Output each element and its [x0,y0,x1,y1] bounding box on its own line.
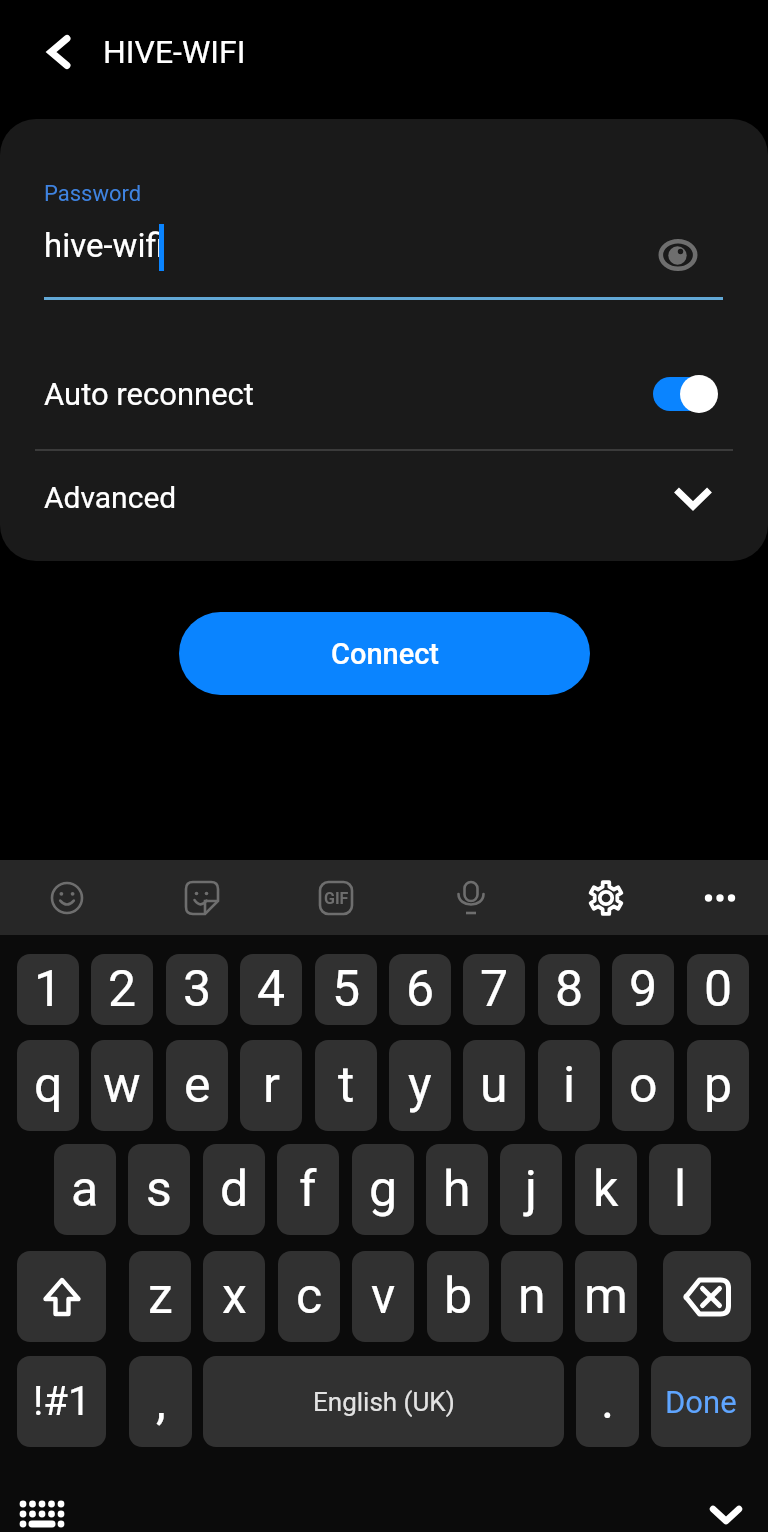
button[interactable]: 3 [166,954,228,1025]
staticText: 5 [332,960,361,1019]
staticText: d [220,1160,249,1219]
button[interactable]: j [500,1144,562,1235]
staticText: c [296,1267,323,1326]
button[interactable]: o [612,1040,674,1131]
button[interactable]: Voice input [438,860,504,935]
staticText: p [704,1056,733,1115]
staticText: l [674,1160,687,1219]
staticText: Password [44,181,142,207]
staticText: a [71,1160,99,1219]
button[interactable]: 7 [463,954,525,1025]
button[interactable]: d [203,1144,265,1235]
staticText: HIVE-WIFI [103,33,246,71]
button[interactable]: 8 [538,954,600,1025]
staticText: u [480,1056,508,1115]
button[interactable]: Keyboard settings [573,860,639,935]
staticText: Auto reconnect [44,376,254,412]
button[interactable]: v [352,1251,414,1342]
staticText: w [103,1056,141,1115]
button[interactable]: r [240,1040,302,1131]
button[interactable]: Emoji [34,860,100,935]
button[interactable]: 0 [687,954,749,1025]
button[interactable]: 4 [240,954,302,1025]
staticText: i [563,1056,576,1115]
staticText: h [443,1160,471,1219]
button[interactable]: k [575,1144,637,1235]
staticText: v [371,1267,396,1326]
button[interactable]: GIF [303,860,369,935]
button[interactable]: Connect [179,612,590,695]
button[interactable]: !#1 [17,1356,106,1447]
button[interactable]: y [389,1040,451,1131]
staticText: o [629,1056,658,1115]
staticText: t [338,1056,355,1115]
button[interactable]: English (UK) [203,1356,564,1447]
button[interactable]: Show password [649,230,707,280]
button[interactable]: 9 [612,954,674,1025]
button[interactable]: Auto reconnect [0,345,768,443]
button[interactable]: a [54,1144,116,1235]
button[interactable]: z [129,1251,191,1342]
staticText: 1 [34,960,63,1019]
staticText: . [601,1372,615,1431]
button[interactable]: l [649,1144,711,1235]
staticText: 6 [406,960,435,1019]
button[interactable]: h [426,1144,488,1235]
staticText: !#1 [33,1378,91,1425]
button[interactable]: t [315,1040,377,1131]
staticText: 4 [257,960,286,1019]
button[interactable]: Switch keyboard [14,1487,70,1532]
staticText: b [444,1267,473,1326]
button[interactable]: w [91,1040,153,1131]
button[interactable]: c [278,1251,340,1342]
button[interactable]: f [277,1144,339,1235]
button[interactable]: Done [651,1356,751,1447]
button[interactable]: Advanced [0,450,768,545]
staticText: k [593,1160,619,1219]
staticText: n [518,1267,546,1326]
button[interactable]: g [352,1144,414,1235]
button[interactable]: Back [0,7,105,97]
button[interactable]: n [501,1251,563,1342]
staticText: j [525,1160,537,1219]
button[interactable]: Auto reconnect [653,374,718,414]
staticText: r [263,1056,280,1115]
button[interactable]: Shift [17,1251,106,1342]
button[interactable]: 2 [91,954,153,1025]
staticText: 0 [704,960,733,1019]
button[interactable]: 5 [315,954,377,1025]
staticText: 3 [183,960,212,1019]
staticText: z [148,1267,173,1326]
staticText: x [222,1267,247,1326]
button[interactable]: More options [687,860,753,935]
button[interactable]: u [463,1040,525,1131]
staticText: e [184,1056,211,1115]
button[interactable]: x [203,1251,265,1342]
staticText: s [146,1160,172,1219]
staticText: hive-wifi [44,226,164,265]
staticText: GIF [324,889,349,908]
staticText: 9 [629,960,658,1019]
staticText: 8 [555,960,584,1019]
staticText: 7 [480,960,509,1019]
button[interactable]: 1 [17,954,79,1025]
button[interactable]: 6 [389,954,451,1025]
staticText: 2 [108,960,137,1019]
button[interactable]: Backspace [663,1251,751,1342]
staticText: g [369,1160,398,1219]
button[interactable]: . [576,1356,639,1447]
staticText: y [408,1056,432,1115]
button[interactable]: p [687,1040,749,1131]
button[interactable]: q [17,1040,79,1131]
button[interactable]: i [538,1040,600,1131]
staticText: Connect [331,637,439,671]
button[interactable]: Stickers [169,860,235,935]
button[interactable]: , [129,1356,192,1447]
button[interactable]: e [166,1040,228,1131]
button[interactable]: m [575,1251,637,1342]
button[interactable]: Hide keyboard [698,1487,754,1532]
button[interactable]: b [427,1251,489,1342]
staticText: , [156,1372,166,1431]
button[interactable]: s [128,1144,190,1235]
staticText: m [584,1267,628,1326]
